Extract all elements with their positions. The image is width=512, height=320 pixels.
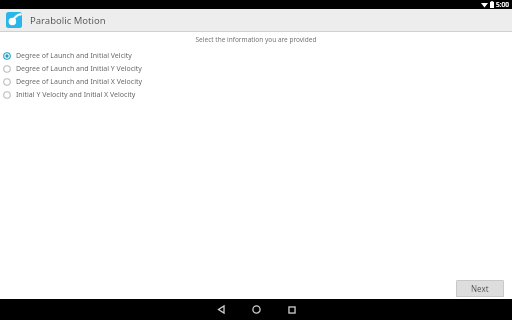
- button[interactable]: Recent apps: [274, 299, 309, 320]
- staticText: Degree of Launch and Initial Y Velocity: [16, 64, 142, 74]
- button[interactable]: Degree of Launch and Initial Velcity: [0, 49, 512, 62]
- button[interactable]: Degree of Launch and Initial X Velocity: [0, 75, 512, 88]
- staticText: Parabolic Motion: [30, 14, 106, 27]
- button[interactable]: Degree of Launch and Initial Y Velocity: [0, 62, 512, 75]
- staticText: Degree of Launch and Initial X Velocity: [16, 77, 143, 87]
- staticText: Next: [471, 283, 489, 294]
- staticText: Select the information you are provided: [0, 35, 512, 44]
- button[interactable]: Back: [204, 299, 239, 320]
- button[interactable]: Next: [456, 280, 504, 297]
- other: Parabolic Motion app icon: [6, 12, 22, 28]
- button[interactable]: Home: [239, 299, 274, 320]
- staticText: Initial Y Velocity and Initial X Velocit…: [16, 90, 136, 100]
- button[interactable]: Initial Y Velocity and Initial X Velocit…: [0, 88, 512, 101]
- staticText: Degree of Launch and Initial Velcity: [16, 51, 132, 61]
- staticText: 5:00: [496, 0, 509, 9]
